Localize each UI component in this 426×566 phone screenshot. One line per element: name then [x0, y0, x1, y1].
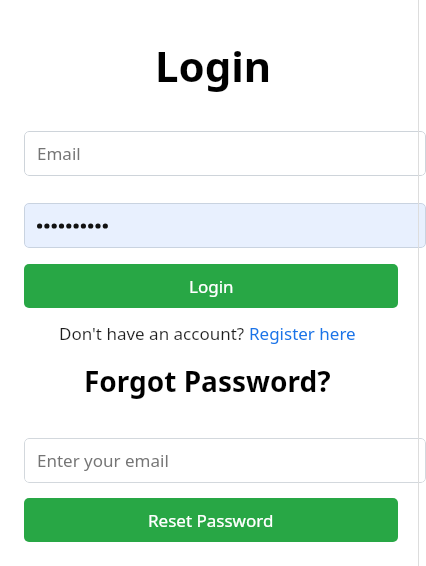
button[interactable]: Reset Password: [24, 498, 398, 542]
staticText: Enter your email: [37, 449, 169, 472]
staticText: Forgot Password?: [84, 362, 331, 400]
button[interactable]: Login: [24, 264, 398, 308]
staticText: Email: [37, 142, 81, 165]
button[interactable]: Register here: [249, 322, 356, 345]
staticText: Login: [155, 37, 272, 94]
button[interactable]: [24, 203, 426, 248]
staticText: Login: [189, 275, 234, 298]
staticText: Register here: [249, 322, 356, 345]
button[interactable]: Email: [24, 131, 426, 176]
staticText: Don't have an account?: [59, 322, 249, 345]
button[interactable]: Enter your email: [24, 438, 426, 483]
staticText: Reset Password: [148, 509, 274, 532]
